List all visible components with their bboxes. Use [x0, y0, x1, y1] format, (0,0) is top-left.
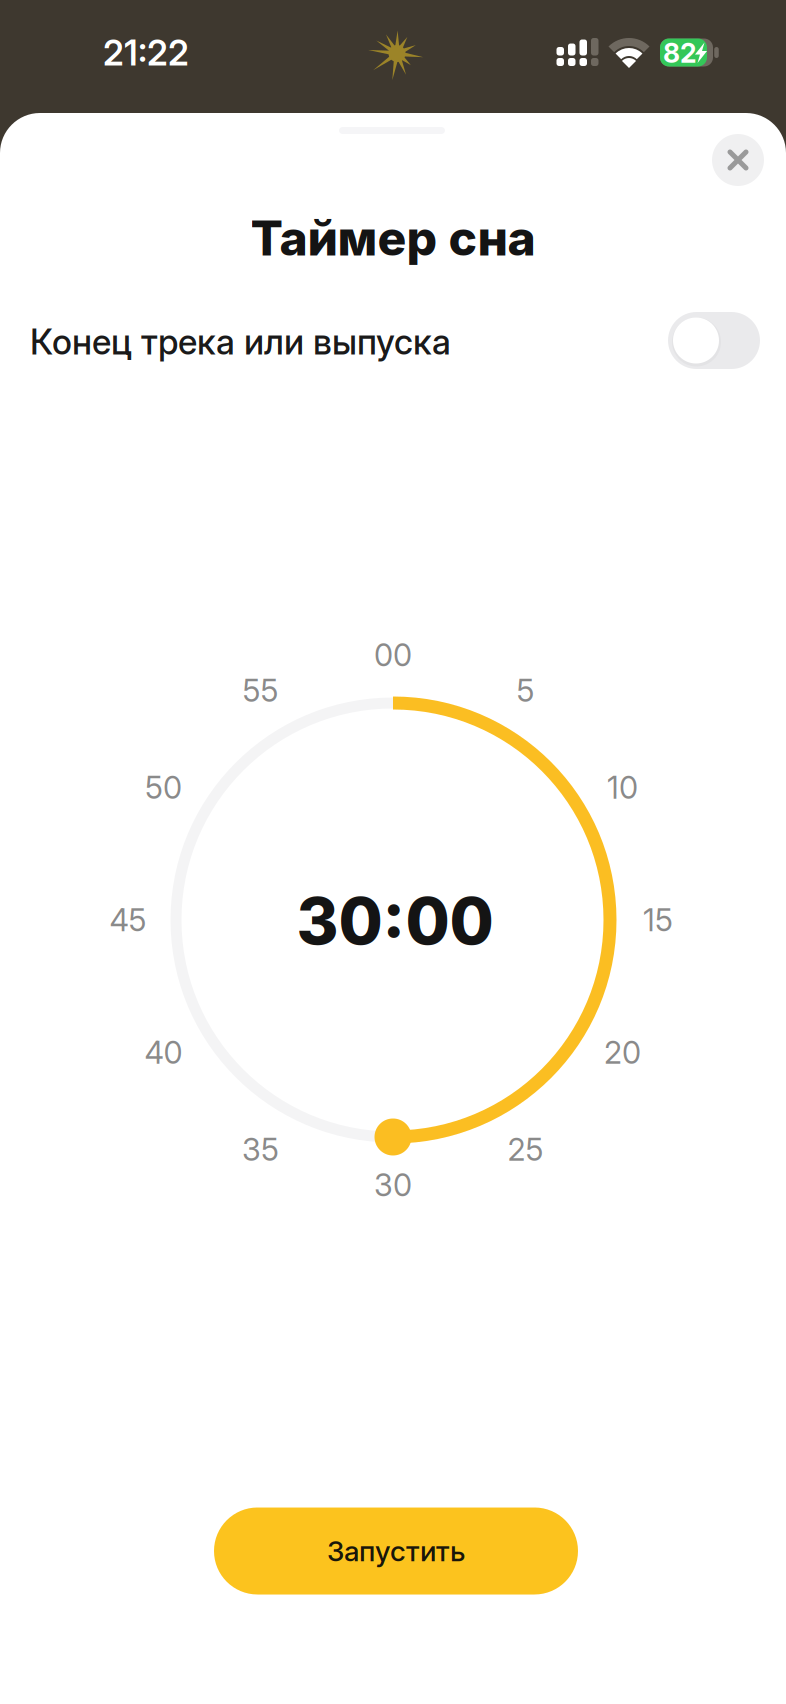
staticText: 82	[663, 37, 697, 69]
button[interactable]	[668, 312, 760, 369]
staticText: 20	[604, 1034, 641, 1071]
button[interactable]: Запустить	[214, 1507, 578, 1594]
staticText: 25	[507, 1131, 543, 1168]
staticText: 5	[516, 672, 534, 709]
staticText: 35	[242, 1131, 279, 1168]
staticText: Запустить	[327, 1534, 465, 1567]
staticText: 21:22	[103, 33, 189, 73]
staticText: 45	[109, 902, 146, 938]
staticText: 00	[374, 637, 412, 673]
staticText: 40	[144, 1034, 182, 1071]
staticText: Конец трека или выпуска	[30, 322, 451, 362]
staticText: 15	[643, 902, 673, 938]
button[interactable]	[712, 134, 764, 186]
staticText: 30	[374, 1167, 412, 1203]
staticText: Таймер сна	[250, 209, 535, 267]
staticText: 30:00	[296, 882, 493, 960]
staticText: 10	[607, 769, 638, 806]
staticText: 50	[145, 769, 182, 806]
staticText: 55	[242, 672, 278, 709]
